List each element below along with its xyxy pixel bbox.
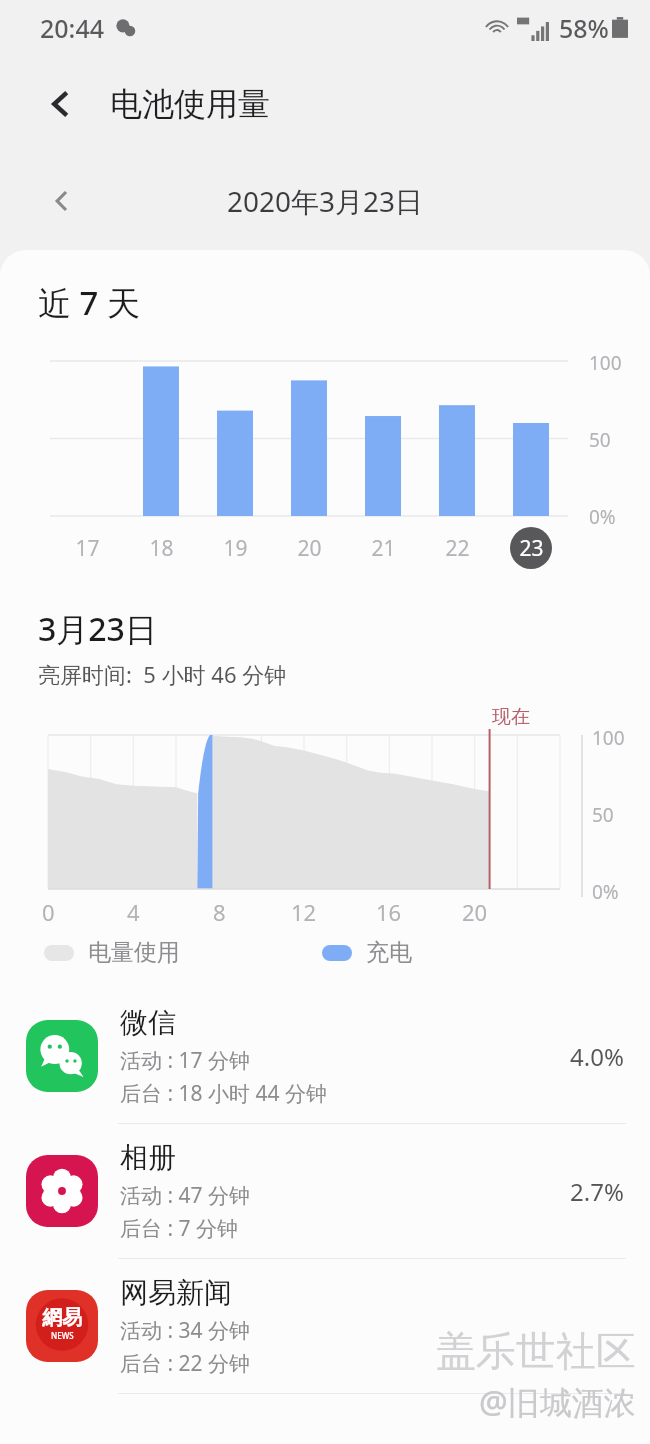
staticText: 21 <box>371 534 396 563</box>
staticText: 2.7% <box>570 1175 624 1208</box>
staticText: NEWS <box>51 1330 74 1341</box>
staticText: 23 <box>519 534 544 563</box>
staticText: 18 <box>149 534 174 563</box>
staticText: 50 <box>592 802 614 828</box>
staticText: 后台 : 22 分钟 <box>120 1349 251 1378</box>
staticText: 活动 : 34 分钟 <box>120 1316 251 1345</box>
button[interactable]: 18 <box>131 532 191 564</box>
staticText: 后台 : 7 分钟 <box>120 1214 239 1243</box>
button[interactable]: 21 <box>353 532 413 564</box>
staticText: 相册 <box>120 1140 176 1175</box>
staticText: 20 <box>462 897 488 927</box>
staticText: 网易新闻 <box>120 1275 232 1310</box>
staticText: 电量使用 <box>88 938 180 967</box>
staticText: 充电 <box>366 938 412 967</box>
staticText: @旧城酒浓 <box>479 1380 636 1424</box>
button[interactable]: 相册 <box>0 1124 650 1258</box>
staticText: 现在 <box>492 705 530 729</box>
staticText: 16 <box>376 897 402 927</box>
staticText: 3月23日 <box>38 607 157 651</box>
button[interactable]: 充电 <box>322 938 412 967</box>
button[interactable]: Previous day <box>36 175 88 227</box>
button[interactable]: 22 <box>427 532 487 564</box>
staticText: 微信 <box>120 1005 176 1040</box>
staticText: 2020年3月23日 <box>227 182 424 220</box>
staticText: 100 <box>589 350 622 376</box>
staticText: 100 <box>592 725 625 751</box>
staticText: 后台 : 18 小时 44 分钟 <box>120 1079 327 1108</box>
staticText: 20:44 <box>40 11 105 45</box>
staticText: 0% <box>592 879 619 905</box>
staticText: 20 <box>297 534 322 563</box>
staticText: 活动 : 47 分钟 <box>120 1181 251 1210</box>
staticText: 盖乐世社区 <box>436 1326 636 1376</box>
staticText: 近 7 天 <box>38 280 141 325</box>
button[interactable]: 19 <box>205 532 265 564</box>
staticText: 17 <box>75 534 100 563</box>
staticText: 網易 <box>42 1305 82 1330</box>
staticText: 0% <box>589 504 616 530</box>
staticText: 活动 : 17 分钟 <box>120 1046 251 1075</box>
staticText: 12 <box>291 897 317 927</box>
staticText: 4 <box>127 897 140 927</box>
button[interactable]: Back <box>34 77 88 131</box>
staticText: 4.0% <box>570 1040 624 1073</box>
button[interactable]: 20 <box>279 532 339 564</box>
staticText: 亮屏时间: 5 小时 46 分钟 <box>38 659 287 689</box>
staticText: 58% <box>559 11 609 45</box>
button[interactable]: 17 <box>57 532 117 564</box>
staticText: 0 <box>42 897 55 927</box>
staticText: 19 <box>223 534 248 563</box>
button[interactable]: 电量使用 <box>44 938 180 967</box>
button[interactable]: 23 <box>501 532 561 564</box>
button[interactable]: 微信 <box>0 989 650 1123</box>
button[interactable]: 網易 <box>0 1259 650 1393</box>
staticText: 电池使用量 <box>110 84 270 124</box>
staticText: 8 <box>213 897 226 927</box>
staticText: 22 <box>445 534 470 563</box>
staticText: 50 <box>589 427 611 453</box>
